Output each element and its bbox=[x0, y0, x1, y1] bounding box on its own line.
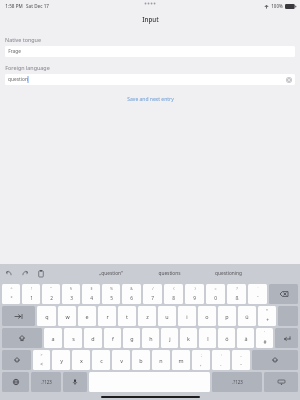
staticText: % bbox=[110, 286, 113, 291]
staticText: m bbox=[178, 357, 184, 364]
button[interactable]: r bbox=[98, 306, 116, 326]
button[interactable]: w bbox=[58, 306, 76, 326]
button[interactable]: b bbox=[132, 350, 150, 370]
button[interactable]: m bbox=[172, 350, 190, 370]
staticText: u bbox=[165, 313, 169, 320]
button[interactable]: „question“ bbox=[82, 266, 140, 280]
button[interactable]: : bbox=[212, 350, 230, 370]
button[interactable]: Shift right bbox=[252, 350, 298, 370]
button[interactable]: Change language bbox=[2, 372, 29, 392]
button[interactable]: p bbox=[218, 306, 236, 326]
staticText: ° bbox=[10, 295, 13, 302]
button[interactable]: question bbox=[5, 74, 295, 85]
button[interactable]: ä bbox=[237, 328, 254, 348]
button[interactable]: y bbox=[52, 350, 70, 370]
button[interactable]: _ bbox=[232, 350, 250, 370]
button[interactable]: t bbox=[118, 306, 136, 326]
button[interactable]: v bbox=[112, 350, 130, 370]
staticText: ! bbox=[31, 286, 32, 291]
button[interactable]: ( bbox=[164, 284, 183, 304]
staticText: a bbox=[51, 335, 55, 342]
button[interactable]: * bbox=[258, 306, 276, 326]
button[interactable]: ` bbox=[248, 284, 267, 304]
button[interactable]: g bbox=[123, 328, 140, 348]
button[interactable]: Tab bbox=[2, 306, 35, 326]
button[interactable]: n bbox=[152, 350, 170, 370]
button[interactable]: h bbox=[142, 328, 159, 348]
button[interactable]: k bbox=[180, 328, 197, 348]
staticText: h bbox=[149, 335, 153, 342]
staticText: ö bbox=[225, 335, 229, 342]
button[interactable]: Dictation bbox=[63, 372, 87, 392]
button[interactable]: s bbox=[64, 328, 82, 348]
button[interactable]: & bbox=[122, 284, 141, 304]
button[interactable]: x bbox=[72, 350, 90, 370]
staticText: / bbox=[152, 286, 154, 291]
staticText: 6 bbox=[130, 295, 133, 302]
staticText: 100% bbox=[271, 3, 283, 9]
button[interactable]: questions bbox=[140, 266, 199, 280]
button[interactable]: o bbox=[198, 306, 216, 326]
button[interactable]: questioning bbox=[199, 266, 258, 280]
staticText: 0 bbox=[214, 295, 217, 302]
staticText: questioning bbox=[215, 270, 242, 277]
button[interactable]: % bbox=[102, 284, 120, 304]
button[interactable]: Backspace bbox=[269, 284, 298, 304]
button[interactable]: Shift bbox=[2, 350, 31, 370]
button[interactable]: Return bbox=[275, 328, 298, 348]
button[interactable]: ) bbox=[185, 284, 204, 304]
button[interactable]: Redo bbox=[21, 269, 29, 277]
staticText: n bbox=[159, 357, 163, 364]
button[interactable]: d bbox=[84, 328, 102, 348]
button[interactable]: i bbox=[178, 306, 196, 326]
button[interactable]: j bbox=[161, 328, 178, 348]
button[interactable]: ' bbox=[256, 328, 273, 348]
button[interactable]: u bbox=[158, 306, 176, 326]
staticText: r bbox=[106, 313, 109, 320]
staticText: y bbox=[60, 357, 63, 364]
staticText: # bbox=[263, 339, 267, 346]
button[interactable]: e bbox=[78, 306, 96, 326]
button[interactable]: ! bbox=[22, 284, 40, 304]
button[interactable]: ü bbox=[238, 306, 256, 326]
button[interactable]: Undo bbox=[5, 269, 13, 277]
button[interactable]: ; bbox=[192, 350, 210, 370]
staticText: s bbox=[72, 335, 75, 342]
staticText: 1 bbox=[30, 295, 33, 302]
button[interactable]: / bbox=[143, 284, 162, 304]
button[interactable]: $ bbox=[82, 284, 100, 304]
button[interactable]: ö bbox=[218, 328, 235, 348]
staticText: t bbox=[126, 313, 128, 320]
button[interactable]: ^ bbox=[2, 284, 20, 304]
staticText: b bbox=[139, 357, 143, 364]
button[interactable]: Frage bbox=[5, 46, 295, 57]
button[interactable]: a bbox=[44, 328, 62, 348]
staticText: . bbox=[220, 361, 222, 368]
staticText: i bbox=[186, 313, 188, 320]
button[interactable]: = bbox=[206, 284, 225, 304]
button[interactable]: .?123 bbox=[31, 372, 61, 392]
button[interactable]: ? bbox=[227, 284, 246, 304]
button[interactable]: f bbox=[104, 328, 121, 348]
button[interactable]: Caps lock bbox=[2, 328, 42, 348]
button[interactable]: Save and next entry bbox=[123, 94, 178, 105]
button[interactable]: .?123 bbox=[212, 372, 262, 392]
staticText: : bbox=[221, 352, 222, 357]
button[interactable]: § bbox=[62, 284, 80, 304]
staticText: + bbox=[266, 317, 269, 324]
staticText: > bbox=[40, 352, 43, 357]
button[interactable]: Clear text bbox=[286, 77, 292, 83]
staticText: Sat Dec 17 bbox=[26, 3, 49, 9]
button[interactable]: > bbox=[33, 350, 50, 370]
button[interactable]: Hide keyboard bbox=[264, 372, 298, 392]
button[interactable]: z bbox=[138, 306, 156, 326]
button[interactable]: q bbox=[37, 306, 56, 326]
staticText: ü bbox=[245, 313, 249, 320]
button[interactable]: Paste bbox=[37, 269, 45, 277]
button[interactable]: " bbox=[42, 284, 60, 304]
button[interactable]: l bbox=[199, 328, 216, 348]
button[interactable]: c bbox=[92, 350, 110, 370]
staticText: _ bbox=[240, 352, 242, 357]
